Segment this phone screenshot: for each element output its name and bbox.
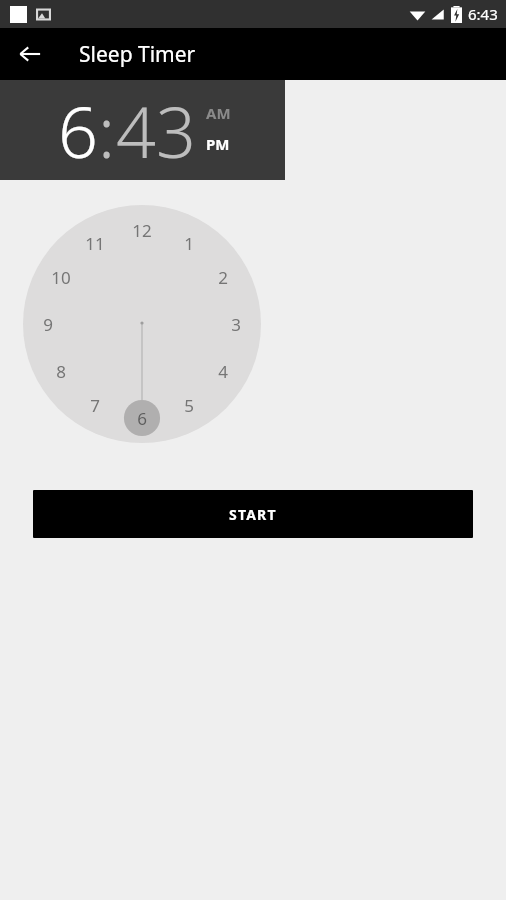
button[interactable]: AM <box>206 103 231 123</box>
staticText: 10 <box>51 266 71 289</box>
staticText: 6:43 <box>468 4 498 24</box>
button[interactable]: PM <box>206 134 230 154</box>
staticText: 5 <box>184 394 194 417</box>
button[interactable]: 43 <box>116 83 196 178</box>
staticText: 43 <box>116 83 196 178</box>
button[interactable]: Back <box>10 34 50 74</box>
staticText: Sleep Timer <box>79 40 196 69</box>
staticText: 8 <box>56 360 66 383</box>
button[interactable]: Clock dial <box>23 205 261 443</box>
staticText: 4 <box>218 360 228 383</box>
staticText: : <box>98 83 116 178</box>
staticText: 9 <box>43 313 53 336</box>
staticText: 12 <box>132 219 152 242</box>
staticText: 2 <box>218 266 228 289</box>
button[interactable]: 6 <box>58 83 98 178</box>
staticText: 6 <box>137 407 147 430</box>
staticText: 7 <box>90 394 100 417</box>
staticText: 11 <box>85 232 105 255</box>
staticText: START <box>229 505 277 524</box>
staticText: 6 <box>58 83 98 178</box>
staticText: PM <box>206 134 230 154</box>
staticText: 1 <box>184 232 194 255</box>
staticText: 3 <box>231 313 241 336</box>
staticText: AM <box>206 103 231 123</box>
button[interactable]: START <box>33 490 473 538</box>
